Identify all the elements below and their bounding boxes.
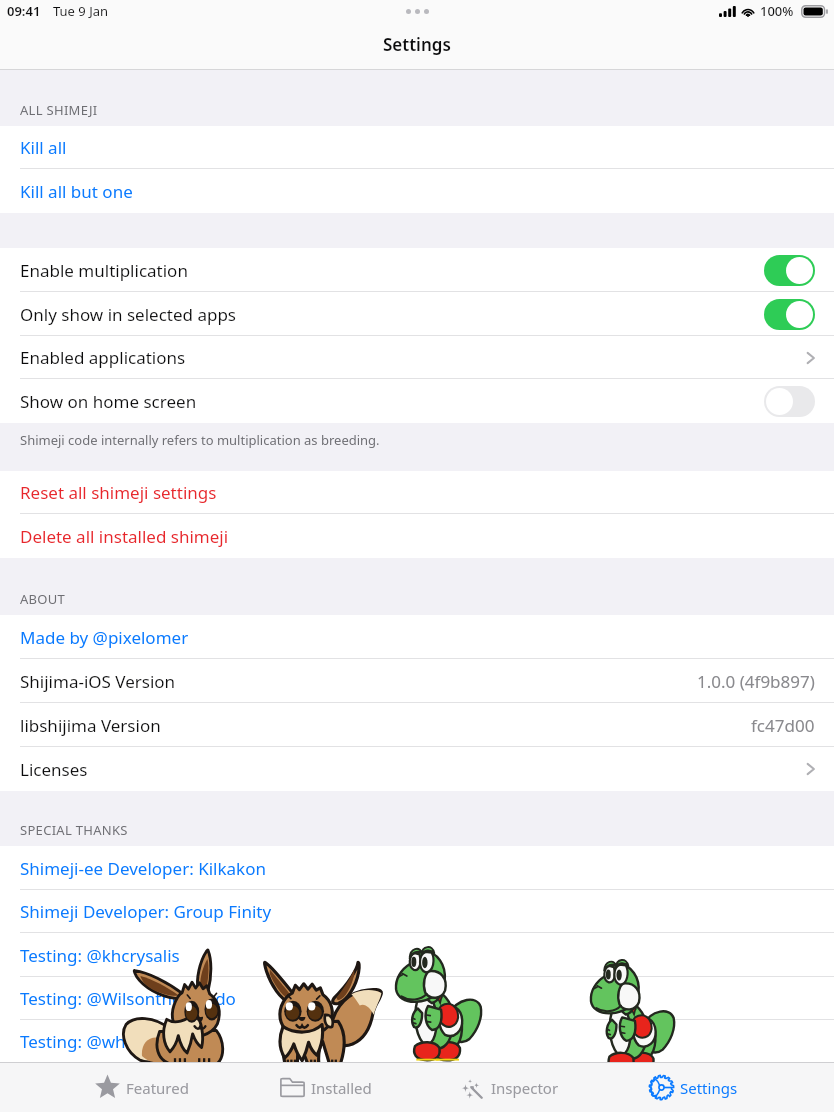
staticText: Testing: @Wilsontheweirdo: [20, 987, 236, 1010]
button[interactable]: Inspector: [417, 1062, 601, 1112]
button[interactable]: Reset all shimeji settings: [0, 471, 834, 514]
staticText: Kill all but one: [20, 180, 133, 203]
staticText: 100%: [760, 2, 794, 20]
staticText: Testing: @khcrysalis: [20, 944, 180, 967]
staticText: libshijima Version: [20, 714, 161, 737]
staticText: Installed: [311, 1078, 372, 1098]
button[interactable]: Only show in selected apps: [0, 292, 834, 336]
button[interactable]: Switch on: [764, 299, 815, 330]
staticText: Settings: [383, 33, 451, 56]
staticText: 09:41: [7, 2, 41, 20]
staticText: Only show in selected apps: [20, 303, 237, 326]
staticText: 1.0.0 (4f9b897): [697, 670, 815, 693]
staticText: Featured: [126, 1078, 189, 1098]
button[interactable]: Settings: [601, 1062, 785, 1112]
button[interactable]: Testing: @whitethewolf: [0, 1020, 834, 1062]
staticText: Shimeji Developer: Group Finity: [20, 900, 272, 923]
staticText: Licenses: [20, 758, 88, 781]
staticText: Enabled applications: [20, 346, 186, 369]
button[interactable]: Show on home screen: [0, 379, 834, 423]
staticText: Testing: @whitethewolf: [20, 1030, 206, 1053]
button[interactable]: Featured: [49, 1062, 233, 1112]
button[interactable]: Delete all installed shimeji: [0, 514, 834, 558]
staticText: Inspector: [491, 1078, 559, 1098]
button[interactable]: Kill all: [0, 126, 834, 169]
staticText: Reset all shimeji settings: [20, 481, 217, 504]
staticText: SPECIAL THANKS: [20, 821, 128, 839]
button[interactable]: Made by @pixelomer: [0, 615, 834, 659]
button[interactable]: Switch on: [764, 255, 815, 286]
button[interactable]: Testing: @Wilsontheweirdo: [0, 977, 834, 1020]
button[interactable]: libshijima Version: [0, 703, 834, 747]
button[interactable]: Enable multiplication: [0, 248, 834, 292]
button[interactable]: Shijima-iOS Version: [0, 659, 834, 703]
button[interactable]: Installed: [233, 1062, 417, 1112]
staticText: ALL SHIMEJI: [20, 101, 98, 119]
button[interactable]: Testing: @khcrysalis: [0, 933, 834, 977]
staticText: Shimeji code internally refers to multip…: [20, 431, 380, 449]
button[interactable]: Shimeji Developer: Group Finity: [0, 890, 834, 933]
button[interactable]: Kill all but one: [0, 169, 834, 213]
staticText: Delete all installed shimeji: [20, 525, 229, 548]
staticText: Tue 9 Jan: [53, 2, 109, 20]
button[interactable]: Switch off: [764, 386, 815, 417]
staticText: Enable multiplication: [20, 259, 188, 282]
staticText: Settings: [680, 1078, 738, 1098]
staticText: fc47d00: [751, 714, 815, 737]
button[interactable]: Licenses: [0, 747, 834, 791]
button[interactable]: Enabled applications: [0, 336, 834, 379]
button[interactable]: Shimeji-ee Developer: Kilkakon: [0, 846, 834, 890]
staticText: Kill all: [20, 136, 67, 159]
staticText: Made by @pixelomer: [20, 626, 189, 649]
staticText: ABOUT: [20, 590, 66, 608]
staticText: Shimeji-ee Developer: Kilkakon: [20, 857, 266, 880]
staticText: Show on home screen: [20, 390, 197, 413]
staticText: Shijima-iOS Version: [20, 670, 176, 693]
